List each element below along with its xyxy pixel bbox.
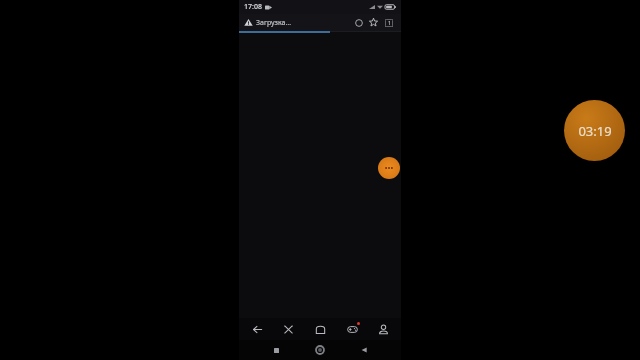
staticText: 17:08 xyxy=(244,2,262,12)
button[interactable]: Stop loading xyxy=(351,15,366,30)
button[interactable]: Back xyxy=(243,318,271,340)
button[interactable]: Recent apps xyxy=(263,340,289,360)
button[interactable]: Bookmark xyxy=(366,15,381,30)
staticText: 03:19 xyxy=(578,122,612,140)
button[interactable]: Games xyxy=(338,318,366,340)
staticText: Загрузка… xyxy=(256,18,292,28)
button[interactable]: Close xyxy=(274,318,302,340)
button[interactable]: Home xyxy=(306,318,334,340)
button[interactable]: Open action xyxy=(378,157,400,179)
button[interactable]: Home xyxy=(307,340,333,360)
button[interactable]: Загрузка… xyxy=(244,14,351,31)
staticText: 1 xyxy=(388,20,391,27)
button[interactable]: Back xyxy=(351,340,377,360)
button[interactable]: Profile xyxy=(369,318,397,340)
button[interactable]: Tabs xyxy=(381,15,396,30)
